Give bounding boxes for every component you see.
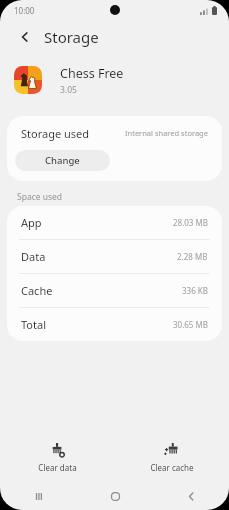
staticText: 28.03 MB — [173, 217, 208, 228]
button[interactable]: App — [7, 206, 222, 240]
button[interactable]: Clear data — [0, 434, 114, 482]
staticText: 336 KB — [182, 285, 208, 296]
staticText: Storage used — [21, 126, 90, 141]
button[interactable]: Navigate up — [12, 24, 38, 50]
staticText: Space used — [17, 191, 63, 203]
staticText: Total — [21, 317, 46, 332]
button[interactable]: Total — [7, 308, 222, 341]
staticText: 10:00 — [14, 5, 35, 16]
staticText: App — [21, 215, 42, 230]
staticText: Chess Free — [60, 65, 124, 82]
button[interactable]: Home — [77, 482, 153, 510]
button[interactable]: Back — [153, 482, 229, 510]
button[interactable]: Data — [7, 240, 222, 274]
staticText: 3.05 — [60, 84, 77, 96]
staticText: Clear data — [38, 462, 77, 473]
button[interactable]: Change — [15, 150, 110, 171]
button[interactable]: Cache — [7, 274, 222, 308]
staticText: 2.28 MB — [177, 251, 208, 262]
staticText: 30.65 MB — [173, 319, 208, 330]
staticText: Change — [45, 154, 80, 167]
staticText: Cache — [21, 283, 53, 298]
staticText: Internal shared storage — [125, 128, 208, 138]
staticText: Storage — [44, 27, 99, 47]
button[interactable]: Recent apps — [0, 482, 77, 510]
button[interactable]: Clear cache — [114, 434, 229, 482]
staticText: Data — [21, 249, 46, 264]
staticText: Clear cache — [150, 462, 194, 473]
